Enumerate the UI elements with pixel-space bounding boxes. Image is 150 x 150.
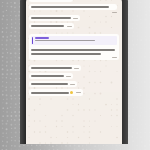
button[interactable] — [29, 89, 83, 96]
button[interactable] — [29, 15, 80, 21]
button[interactable] — [29, 81, 77, 87]
button[interactable] — [29, 4, 117, 10]
button[interactable] — [29, 73, 73, 79]
button[interactable] — [29, 23, 74, 29]
button[interactable] — [29, 65, 81, 71]
button[interactable] — [29, 34, 119, 60]
